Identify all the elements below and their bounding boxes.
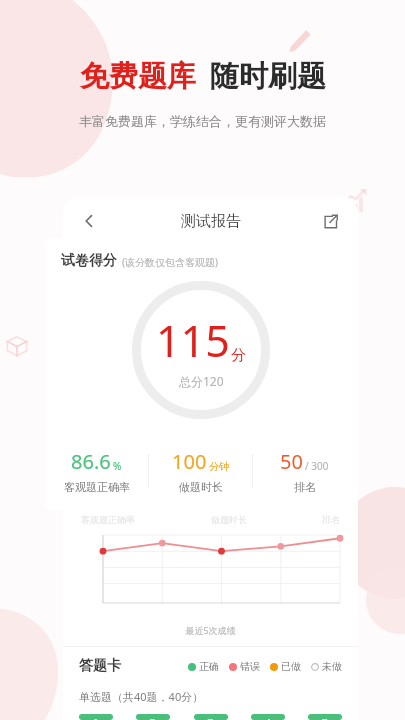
button[interactable]: 100 <box>149 448 252 494</box>
staticText: 丰富免费题库，学练结合，更有测评大数据 <box>79 113 326 129</box>
staticText: 总分120 <box>179 373 224 389</box>
staticText: 2 <box>149 714 157 720</box>
staticText: % <box>113 459 122 473</box>
staticText: 未做 <box>322 660 342 673</box>
button[interactable]: 86.6 <box>45 448 148 494</box>
button[interactable]: 分享 <box>316 207 344 235</box>
staticText: 1 <box>92 714 100 720</box>
button[interactable]: 返回 <box>75 207 103 235</box>
staticText: 3 <box>207 714 215 720</box>
button[interactable]: 2 <box>136 714 170 720</box>
staticText: 免费题库 <box>80 58 196 95</box>
button[interactable]: 5 <box>308 714 342 720</box>
staticText: 分钟 <box>209 460 229 473</box>
button[interactable]: 50 <box>253 448 356 494</box>
staticText: 答题卡 <box>79 657 121 675</box>
staticText: / 300 <box>305 459 329 473</box>
staticText: 做题时长 <box>211 514 247 525</box>
staticText: (该分数仅包含客观题) <box>122 255 218 269</box>
staticText: 最近5次成绩 <box>63 624 358 636</box>
staticText: 86.6 <box>71 448 111 475</box>
staticText: 5 <box>321 714 329 720</box>
staticText: 排名 <box>294 480 316 494</box>
staticText: 115 <box>156 311 230 370</box>
staticText: 100 <box>172 448 207 475</box>
staticText: 分 <box>231 346 246 365</box>
staticText: 4 <box>264 714 272 720</box>
staticText: 50 <box>280 448 303 475</box>
staticText: 随时刷题 <box>210 58 326 95</box>
staticText: 错误 <box>240 660 260 673</box>
button[interactable]: 1 <box>79 714 113 720</box>
staticText: 正确 <box>199 660 219 673</box>
staticText: 做题时长 <box>179 480 223 494</box>
staticText: 测试报告 <box>181 212 241 231</box>
staticText: 客观题正确率 <box>64 480 130 494</box>
button[interactable]: 4 <box>251 714 285 720</box>
staticText: 客观题正确率 <box>81 514 135 525</box>
staticText: 排名 <box>322 514 340 525</box>
button[interactable]: 3 <box>194 714 228 720</box>
staticText: 已做 <box>281 660 301 673</box>
staticText: 试卷得分 <box>61 252 117 270</box>
staticText: 单选题（共40题，40分） <box>79 689 204 704</box>
